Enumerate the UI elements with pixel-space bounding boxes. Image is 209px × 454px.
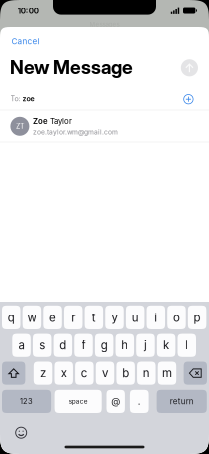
button[interactable]: q <box>2 306 20 329</box>
button[interactable]: y <box>105 306 124 329</box>
button[interactable]: r <box>64 306 82 329</box>
staticText: t <box>92 310 96 324</box>
staticText: zoe <box>23 94 35 103</box>
staticText: x <box>61 366 67 380</box>
button[interactable]: p <box>188 306 206 329</box>
staticText: h <box>121 338 128 352</box>
staticText: a <box>19 338 25 352</box>
staticText: d <box>59 338 66 352</box>
staticText: l <box>185 338 188 352</box>
staticText: v <box>102 366 108 380</box>
button[interactable]: n <box>137 361 156 385</box>
staticText: k <box>163 338 169 352</box>
staticText: e <box>49 310 56 324</box>
button[interactable]: @ <box>106 390 125 413</box>
staticText: New Message <box>10 56 133 79</box>
staticText: u <box>132 310 139 324</box>
staticText: f <box>81 338 85 352</box>
staticText: j <box>144 338 147 352</box>
staticText: 123 <box>20 397 33 406</box>
staticText: zoe.taylor.wm@gmail.com <box>33 128 118 136</box>
button[interactable]: k <box>157 334 175 357</box>
button[interactable]: return <box>157 390 207 413</box>
button[interactable]: ZT <box>10 111 208 142</box>
button[interactable]: . <box>130 390 149 413</box>
staticText: q <box>8 310 15 324</box>
button[interactable]: space <box>55 390 102 413</box>
button[interactable]: z <box>34 361 52 385</box>
button[interactable]: i <box>146 306 165 329</box>
staticText: b <box>122 366 129 380</box>
button[interactable]: o <box>167 306 186 329</box>
staticText: c <box>81 366 88 380</box>
button[interactable]: t <box>85 306 103 329</box>
staticText: . <box>138 396 141 407</box>
button[interactable]: Shift <box>2 361 25 385</box>
button[interactable]: c <box>75 361 94 385</box>
button[interactable]: j <box>136 334 155 357</box>
staticText: 10:00 <box>18 6 39 15</box>
button[interactable]: v <box>96 361 114 385</box>
staticText: m <box>162 366 172 380</box>
button[interactable]: Delete <box>184 361 207 385</box>
staticText: i <box>154 310 157 324</box>
button[interactable]: m <box>158 361 176 385</box>
button[interactable]: Add contact <box>183 94 193 104</box>
button[interactable]: Send <box>181 59 198 76</box>
staticText: Taylor <box>50 116 72 126</box>
staticText: @ <box>111 396 120 407</box>
button[interactable]: a <box>12 334 31 357</box>
staticText: w <box>27 310 36 324</box>
staticText: Zoe <box>33 116 50 126</box>
button[interactable]: d <box>54 334 72 357</box>
staticText: z <box>40 366 46 380</box>
staticText: ZT <box>16 122 24 130</box>
staticText: space <box>69 397 88 405</box>
button[interactable]: b <box>116 361 135 385</box>
staticText: r <box>71 310 75 324</box>
button[interactable]: s <box>33 334 51 357</box>
staticText: g <box>101 338 108 352</box>
button[interactable]: x <box>54 361 73 385</box>
button[interactable]: l <box>177 334 196 357</box>
button[interactable]: e <box>43 306 62 329</box>
staticText: p <box>194 310 201 324</box>
button[interactable]: w <box>23 306 41 329</box>
staticText: return <box>170 397 194 406</box>
staticText: To: <box>11 94 23 103</box>
staticText: y <box>111 310 117 324</box>
button[interactable]: h <box>115 334 134 357</box>
staticText: s <box>39 338 45 352</box>
button[interactable]: 123 <box>2 390 51 413</box>
button[interactable]: Cancel <box>12 33 48 49</box>
staticText: n <box>143 366 150 380</box>
button[interactable]: f <box>74 334 93 357</box>
button[interactable]: g <box>95 334 113 357</box>
staticText: Cancel <box>12 36 40 46</box>
staticText: o <box>173 310 180 324</box>
staticText: Messages <box>89 21 119 28</box>
button[interactable]: Emoji <box>15 427 27 439</box>
button[interactable]: u <box>126 306 144 329</box>
